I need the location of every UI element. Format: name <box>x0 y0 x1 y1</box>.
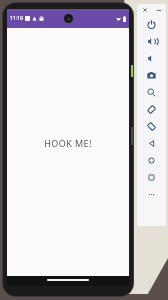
button[interactable]: Power <box>137 16 166 33</box>
button[interactable]: Volume down <box>137 50 166 67</box>
button[interactable]: Take screenshot <box>137 67 166 84</box>
button[interactable]: Back <box>137 135 166 152</box>
button[interactable]: More <box>137 186 166 203</box>
button[interactable]: Recent apps <box>137 169 166 186</box>
button[interactable]: Volume up <box>137 33 166 50</box>
button[interactable]: Rotate left <box>137 101 166 118</box>
button[interactable]: Rotate right <box>137 118 166 135</box>
button[interactable]: Close <box>141 6 149 14</box>
button[interactable]: Home <box>137 152 166 169</box>
button[interactable]: Zoom <box>137 84 166 101</box>
staticText: HOOK ME! <box>44 137 92 149</box>
button[interactable]: HOOK ME! <box>38 133 98 153</box>
button[interactable]: Minimize <box>155 6 163 14</box>
staticText: 11:19 <box>10 15 23 22</box>
